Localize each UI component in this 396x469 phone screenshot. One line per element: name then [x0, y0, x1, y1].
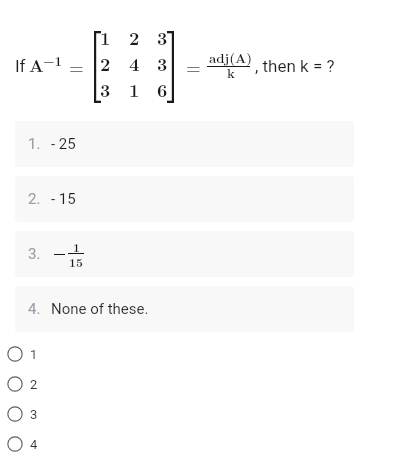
staticText: 1 [129, 77, 140, 103]
staticText: 4 [30, 437, 38, 452]
staticText: 1 [73, 238, 80, 255]
staticText: A [29, 53, 44, 77]
button[interactable]: 4. [15, 286, 354, 332]
staticText: 1 [100, 25, 111, 51]
button[interactable]: 2 [0, 369, 396, 399]
button[interactable]: 1 [0, 339, 396, 369]
staticText: - 15 [51, 190, 76, 208]
staticText: None of these. [51, 300, 149, 318]
staticText: 1 [30, 347, 38, 362]
staticText: −1 [43, 51, 63, 70]
button[interactable]: 3 [0, 399, 396, 429]
staticText: = [186, 53, 201, 80]
staticText: 3 [30, 407, 38, 422]
staticText: adj(A) [209, 48, 253, 67]
button[interactable]: 2. [15, 176, 354, 222]
staticText: 3. [28, 245, 41, 263]
staticText: k [227, 63, 235, 82]
staticText: 4 [129, 51, 140, 77]
staticText: If [15, 56, 26, 76]
button[interactable]: 3. [15, 231, 354, 277]
staticText: 3 [157, 25, 168, 51]
staticText: 4. [28, 300, 41, 318]
staticText: 2 [100, 51, 111, 77]
staticText: = [69, 53, 84, 80]
staticText: 2 [129, 25, 140, 51]
staticText: , then k = ? [255, 56, 335, 76]
staticText: 3 [100, 77, 111, 103]
staticText: 2 [30, 377, 38, 392]
staticText: 15 [69, 253, 83, 270]
staticText: - 25 [51, 135, 76, 153]
staticText: 6 [157, 77, 168, 103]
staticText: 2. [28, 190, 41, 208]
staticText: 1. [28, 135, 41, 153]
staticText: 3 [157, 51, 168, 77]
button[interactable]: 1. [15, 121, 354, 167]
button[interactable]: 4 [0, 429, 396, 459]
